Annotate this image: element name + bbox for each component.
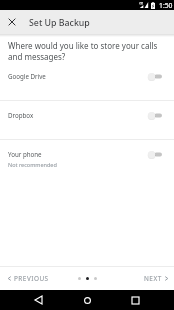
button[interactable]: NEXT [138,270,174,287]
button[interactable]: Close [1,11,23,33]
staticText: Where would you like to store your calls… [8,40,162,62]
button[interactable]: Home [78,291,96,309]
staticText: NEXT [144,274,162,283]
staticText: Dropbox [8,111,34,119]
button[interactable]: Recents [126,291,144,309]
button[interactable]: Google Drive [0,62,174,101]
staticText: 1:50 [159,1,173,10]
button[interactable]: Your phone [0,140,174,179]
staticText: PREVIOUS [14,274,49,283]
button[interactable]: PREVIOUS [0,270,55,287]
staticText: Your phone [8,150,42,158]
staticText: Not recommended [8,161,57,168]
staticText: Google Drive [8,72,46,80]
button[interactable]: Back [29,291,47,309]
staticText: Set Up Backup [29,17,90,29]
button[interactable]: Dropbox [0,101,174,140]
